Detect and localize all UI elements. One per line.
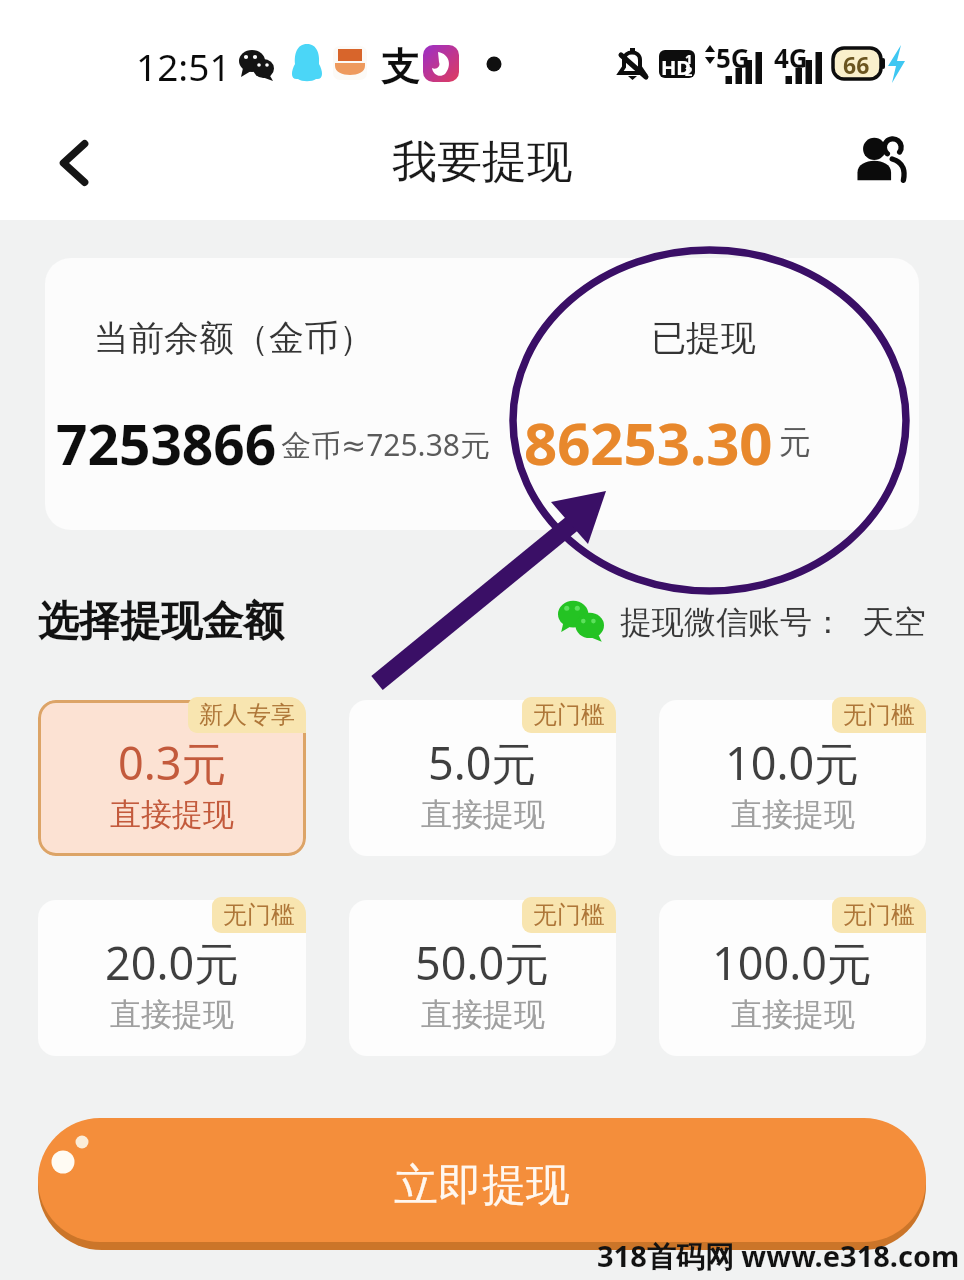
staticText: 12:51	[136, 41, 231, 91]
staticText: 4G	[774, 40, 808, 75]
staticText: 提现微信账号：	[620, 602, 844, 642]
staticText: 5.0元	[428, 732, 537, 793]
staticText: 66	[843, 49, 870, 80]
staticText: 86253.30	[524, 403, 773, 482]
staticText: HD	[661, 54, 691, 81]
staticText: 无门槛	[223, 900, 295, 930]
staticText: 直接提现	[110, 995, 234, 1034]
staticText: 318首码网 www.e318.com	[597, 1236, 960, 1276]
staticText: 立即提现	[394, 1158, 570, 1213]
staticText: 直接提现	[421, 795, 545, 834]
staticText: 天空	[862, 602, 926, 642]
staticText: 无门槛	[843, 900, 915, 930]
staticText: 直接提现	[731, 795, 855, 834]
staticText: 5G	[716, 40, 750, 75]
button[interactable]: 提现微信账号：	[558, 599, 926, 645]
staticText: 支	[381, 43, 419, 91]
staticText: 0.3元	[118, 732, 227, 793]
staticText: 金币≈725.38元	[281, 424, 490, 465]
staticText: 无门槛	[533, 900, 605, 930]
staticText: 直接提现	[421, 995, 545, 1034]
button[interactable]: 20.0元	[38, 900, 306, 1056]
staticText: 10.0元	[725, 732, 860, 793]
staticText: 20.0元	[105, 932, 240, 993]
staticText: 选择提现金额	[38, 596, 284, 648]
button[interactable]: Back	[39, 127, 111, 199]
staticText: 无门槛	[533, 700, 605, 730]
staticText: 当前余额（金币）	[94, 316, 374, 360]
staticText: 已提现	[651, 316, 756, 360]
staticText: 100.0元	[712, 932, 873, 993]
staticText: 直接提现	[110, 795, 234, 834]
staticText: 1	[685, 50, 693, 68]
button[interactable]: 当前余额（金币）	[45, 258, 919, 530]
staticText: 直接提现	[731, 995, 855, 1034]
staticText: 2	[685, 62, 693, 80]
staticText: 50.0元	[415, 932, 550, 993]
button[interactable]: 10.0元	[659, 700, 926, 856]
staticText: 我要提现	[392, 134, 572, 191]
button[interactable]: 立即提现	[38, 1118, 926, 1242]
staticText: 无门槛	[843, 700, 915, 730]
button[interactable]: 50.0元	[349, 900, 616, 1056]
staticText: 新人专享	[199, 700, 295, 730]
staticText: 元	[779, 422, 811, 462]
button[interactable]: 0.3元	[38, 700, 306, 856]
button[interactable]: 100.0元	[659, 900, 926, 1056]
button[interactable]: 5.0元	[349, 700, 616, 856]
button[interactable]: Contacts	[841, 119, 921, 199]
staticText: 7253866	[56, 406, 277, 481]
